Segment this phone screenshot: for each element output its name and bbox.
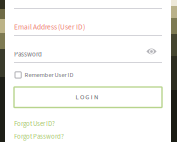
staticText: Forgot Password? [14,132,64,141]
button[interactable]: Forgot Password? [14,132,64,141]
staticText: Email Address (User ID) [14,22,85,32]
staticText: Remember User ID [25,70,74,79]
staticText: Password [14,49,42,59]
staticText: LOGIN [75,92,100,102]
button[interactable]: Show password [146,47,157,56]
button[interactable]: LOGIN [14,87,162,107]
button[interactable]: Forgot User ID? [14,119,55,129]
button[interactable]: Remember User ID [15,70,74,79]
staticText: Forgot User ID? [14,119,55,129]
